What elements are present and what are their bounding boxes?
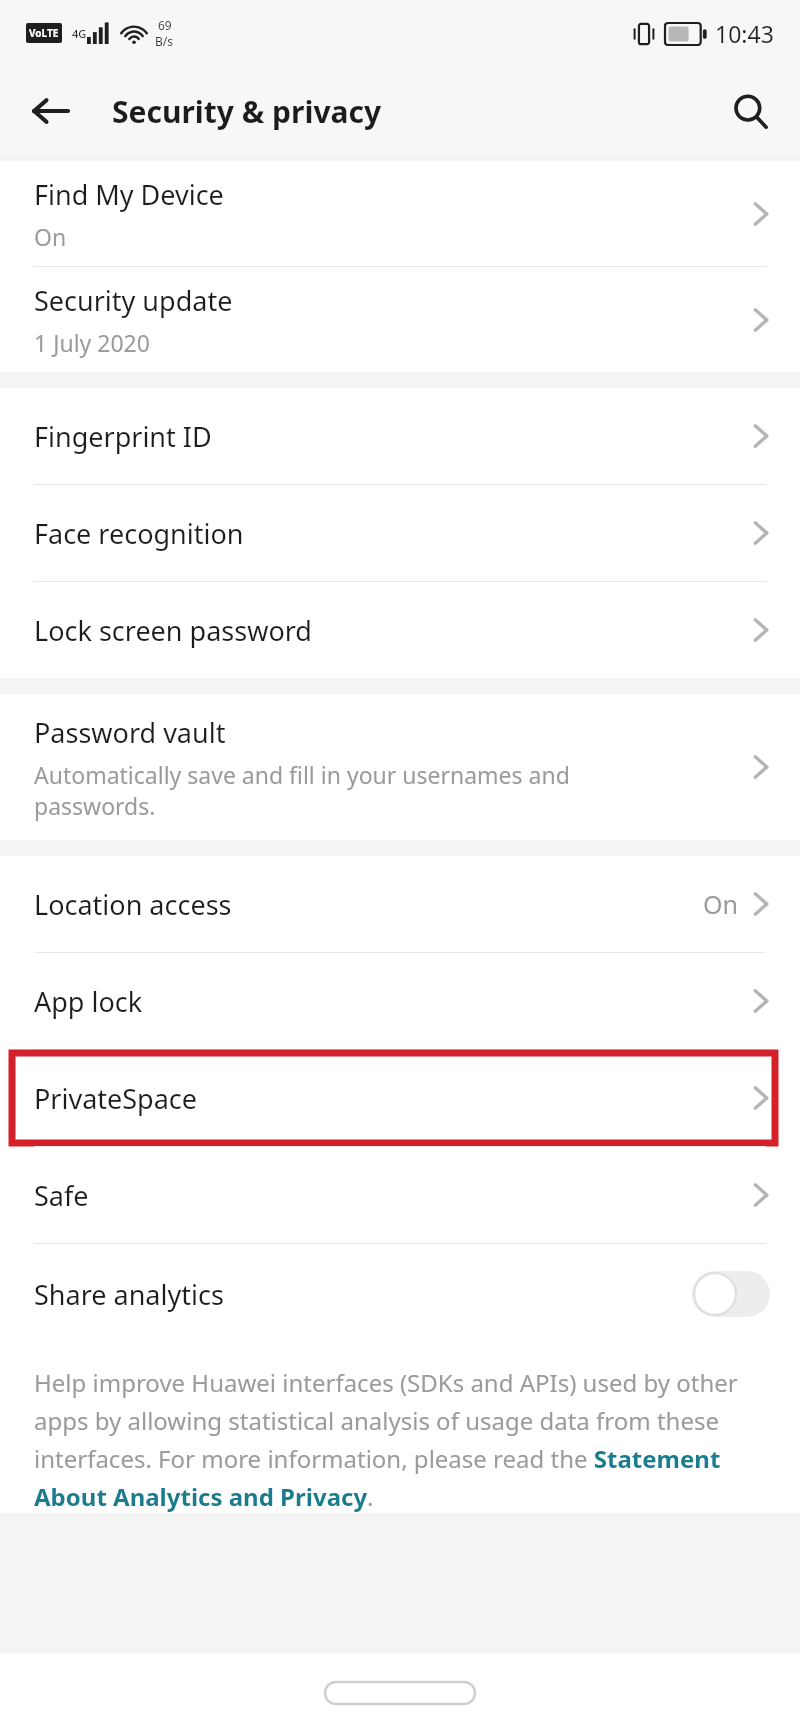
staticText: Password vault: [34, 714, 226, 751]
staticText: B/s: [155, 33, 174, 49]
staticText: VoLTE: [29, 26, 59, 40]
button[interactable]: PrivateSpace: [0, 1050, 800, 1146]
staticText: Help improve Huawei interfaces (SDKs and…: [34, 1366, 774, 1513]
button[interactable]: Face recognition: [0, 485, 800, 581]
button[interactable]: Security update: [0, 267, 800, 372]
button[interactable]: Safe: [0, 1147, 800, 1243]
staticText: Face recognition: [34, 515, 244, 552]
button[interactable]: Location access: [0, 856, 800, 952]
button[interactable]: Back: [18, 79, 82, 143]
button[interactable]: Fingerprint ID: [0, 388, 800, 484]
staticText: 69: [158, 17, 172, 33]
staticText: PrivateSpace: [34, 1080, 198, 1117]
staticText: passwords.: [34, 790, 156, 821]
staticText: App lock: [34, 983, 143, 1020]
staticText: Fingerprint ID: [34, 418, 212, 455]
button[interactable]: Password vault: [0, 694, 800, 840]
staticText: On: [703, 887, 738, 921]
button[interactable]: Find My Device: [0, 161, 800, 266]
staticText: Lock screen password: [34, 612, 312, 649]
button[interactable]: Search: [718, 79, 782, 143]
staticText: Find My Device: [34, 176, 224, 213]
staticText: On: [34, 221, 67, 252]
staticText: 4G: [72, 26, 87, 41]
staticText: Security & privacy: [112, 91, 382, 132]
staticText: Automatically save and fill in your user…: [34, 759, 570, 790]
staticText: 10:43: [715, 18, 774, 49]
staticText: 1 July 2020: [34, 327, 150, 358]
staticText: Location access: [34, 886, 232, 923]
button[interactable]: Share analytics: [0, 1244, 800, 1344]
staticText: Safe: [34, 1177, 89, 1214]
button[interactable]: App lock: [0, 953, 800, 1049]
button[interactable]: Lock screen password: [0, 582, 800, 678]
staticText: Share analytics: [34, 1276, 224, 1313]
staticText: Security update: [34, 282, 233, 319]
